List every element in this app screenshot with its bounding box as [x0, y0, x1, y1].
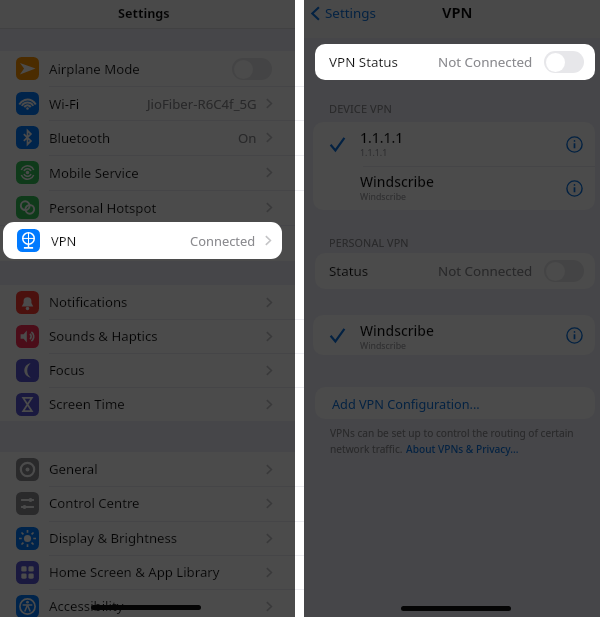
staticText: Not Connected	[438, 53, 533, 71]
staticText: VPNs can be set up to control the routin…	[330, 426, 574, 440]
button[interactable]: Home Screen & App Library	[16, 555, 272, 589]
staticText: Settings	[118, 5, 170, 22]
staticText: Display & Brightness	[49, 529, 178, 547]
staticText: Bluetooth	[49, 129, 111, 147]
staticText: About VPNs & Privacy...	[406, 442, 519, 456]
button[interactable]: 1.1.1.1	[330, 122, 583, 166]
button[interactable]: Status	[315, 253, 595, 289]
staticText: Mobile Service	[49, 164, 139, 182]
button[interactable]: Wi-Fi	[16, 86, 272, 121]
staticText: VPN Status	[329, 53, 399, 71]
staticText: Sounds & Haptics	[49, 327, 158, 345]
button[interactable]: Windscribe	[330, 166, 583, 210]
staticText: Notifications	[49, 293, 128, 311]
staticText: 1.1.1.1	[360, 128, 404, 147]
button[interactable]: General	[16, 452, 272, 486]
button[interactable]: More info	[566, 136, 583, 153]
staticText: On	[238, 129, 257, 147]
staticText: Windscribe	[360, 172, 434, 191]
button[interactable]: Personal Hotspot	[16, 190, 272, 225]
button[interactable]: Toggle	[232, 58, 272, 80]
button[interactable]: Toggle	[544, 51, 584, 73]
staticText: Windscribe	[360, 191, 407, 203]
staticText: Home Screen & App Library	[49, 563, 220, 581]
button[interactable]: Settings	[311, 4, 376, 22]
staticText: Windscribe	[360, 340, 407, 352]
staticText: 1.1.1.1	[360, 147, 388, 159]
staticText: DEVICE VPN	[329, 101, 393, 116]
button[interactable]: Add VPN Configuration...	[315, 387, 595, 419]
button[interactable]: Accessibility	[16, 589, 272, 617]
staticText: Not Connected	[438, 262, 533, 280]
staticText: Not Connected	[438, 53, 533, 71]
button[interactable]: Focus	[16, 353, 272, 387]
button[interactable]: Mobile Service	[16, 155, 272, 190]
staticText: VPN	[442, 2, 473, 22]
staticText: VPN	[51, 232, 77, 250]
button[interactable]: Toggle	[544, 51, 584, 73]
staticText: Control Centre	[49, 494, 140, 512]
staticText: Accessibility	[49, 597, 124, 615]
staticText: JioFiber-R6C4f_5G	[147, 95, 257, 113]
button[interactable]: More info	[566, 327, 583, 344]
button[interactable]: VPN	[3, 222, 282, 259]
staticText: Status	[329, 262, 369, 280]
button[interactable]: Windscribe	[330, 315, 583, 355]
button[interactable]: VPN Status	[315, 44, 595, 80]
button[interactable]: Bluetooth	[16, 120, 272, 155]
staticText: network traffic.	[330, 442, 406, 456]
button[interactable]: Display & Brightness	[16, 521, 272, 555]
button[interactable]: Toggle	[544, 260, 584, 282]
staticText: General	[49, 460, 98, 478]
staticText: Airplane Mode	[49, 60, 140, 78]
button[interactable]: Sounds & Haptics	[16, 319, 272, 353]
staticText: Connected	[190, 232, 256, 250]
button[interactable]: More info	[566, 180, 583, 197]
staticText: Screen Time	[49, 395, 125, 413]
button[interactable]: Notifications	[16, 285, 272, 319]
staticText: Personal Hotspot	[49, 199, 157, 217]
staticText: Focus	[49, 361, 85, 379]
staticText: VPN Status	[329, 53, 399, 71]
staticText: Settings	[325, 4, 376, 22]
staticText: Windscribe	[360, 321, 434, 340]
staticText: Wi-Fi	[49, 95, 80, 113]
button[interactable]: Airplane Mode	[16, 51, 272, 86]
staticText: PERSONAL VPN	[329, 235, 409, 250]
staticText: Add VPN Configuration...	[332, 395, 480, 412]
button[interactable]: Screen Time	[16, 387, 272, 421]
button[interactable]: Control Centre	[16, 486, 272, 520]
button[interactable]: VPN Status	[315, 44, 595, 80]
